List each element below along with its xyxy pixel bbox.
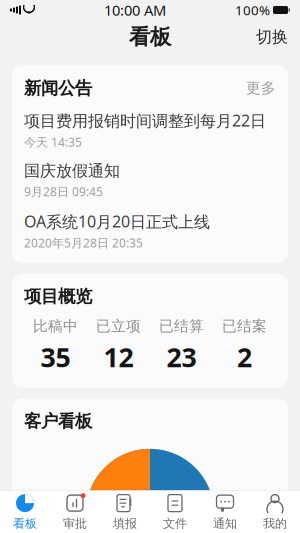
- staticText: 已立项: [96, 317, 141, 335]
- staticText: 新闻公告: [24, 77, 92, 99]
- staticText: 100%: [235, 1, 270, 19]
- button[interactable]: 国庆放假通知: [24, 161, 276, 200]
- staticText: 填报: [113, 516, 137, 531]
- button[interactable]: 文件: [150, 491, 200, 533]
- button[interactable]: 项目费用报销时间调整到每月22日: [24, 110, 276, 150]
- button[interactable]: 更多: [246, 79, 276, 97]
- staticText: 12: [103, 339, 133, 374]
- staticText: 2: [237, 339, 252, 374]
- staticText: 审批: [63, 516, 87, 531]
- staticText: 2020年5月28日 20:35: [24, 235, 143, 251]
- staticText: 切换: [256, 27, 288, 47]
- button[interactable]: 已立项: [87, 317, 150, 374]
- staticText: 34.2%: [115, 494, 141, 506]
- staticText: 项目费用报销时间调整到每月22日: [24, 110, 266, 131]
- staticText: 已结算: [159, 317, 204, 335]
- staticText: 看板: [13, 516, 37, 531]
- button[interactable]: 已结算: [150, 317, 213, 374]
- button[interactable]: 已结案: [213, 317, 276, 374]
- button[interactable]: 看板: [0, 491, 50, 533]
- staticText: 我的: [263, 516, 287, 531]
- staticText: 项目概览: [24, 286, 92, 307]
- button[interactable]: 填报: [100, 491, 150, 533]
- staticText: 今天 14:35: [24, 134, 82, 150]
- button[interactable]: 我的: [250, 491, 300, 533]
- button[interactable]: 切换: [244, 19, 300, 55]
- button[interactable]: 通知: [200, 491, 250, 533]
- staticText: 已结案: [222, 317, 267, 335]
- staticText: 看板: [129, 24, 171, 50]
- button[interactable]: 比稿中: [24, 317, 87, 374]
- staticText: 国庆放假通知: [24, 161, 120, 181]
- staticText: 9月28日 09:45: [24, 184, 103, 199]
- staticText: 文件: [163, 516, 187, 531]
- staticText: 23: [166, 339, 196, 374]
- staticText: 比稿中: [33, 317, 78, 335]
- button[interactable]: OA系统10月20日正式上线: [24, 211, 276, 251]
- staticText: 10:00 AM: [104, 0, 166, 20]
- staticText: OA系统10月20日正式上线: [24, 211, 210, 232]
- staticText: 通知: [213, 516, 237, 531]
- button[interactable]: 审批: [50, 491, 100, 533]
- staticText: 客户看板: [24, 410, 92, 432]
- staticText: 更多: [246, 79, 276, 97]
- staticText: 35: [40, 339, 70, 374]
